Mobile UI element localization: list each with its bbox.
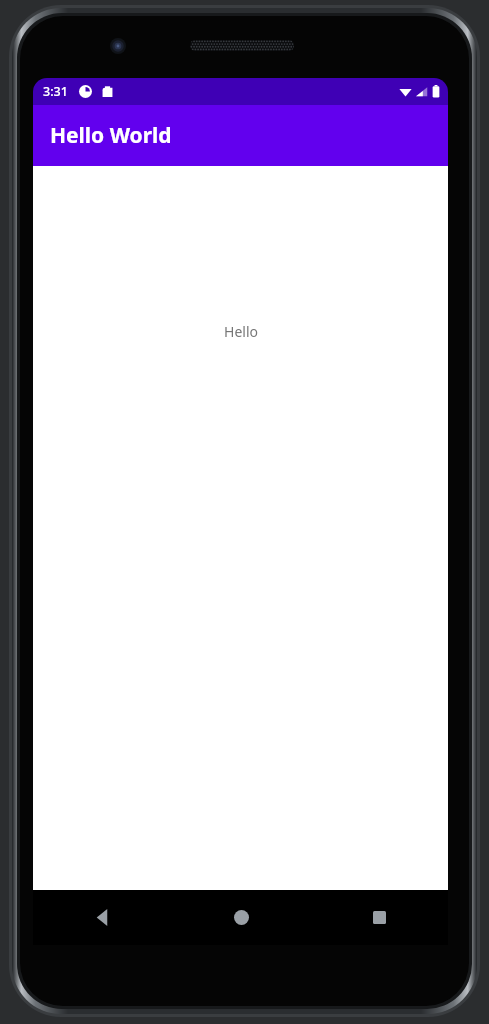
staticText: Hello <box>224 322 258 341</box>
button[interactable]: Hello World <box>33 105 448 166</box>
staticText: 3:31 <box>43 83 68 100</box>
button[interactable]: Back <box>33 890 172 945</box>
staticText: Hello World <box>50 121 172 150</box>
button[interactable]: Recent apps <box>310 890 448 945</box>
button[interactable]: Home <box>172 890 310 945</box>
